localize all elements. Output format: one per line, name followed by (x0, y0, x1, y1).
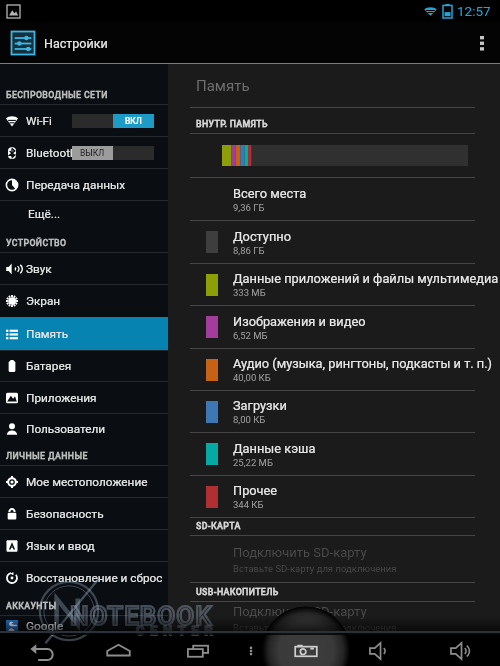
staticText: 9,36 ГБ (233, 202, 265, 213)
staticText: Язык и ввод (26, 539, 95, 553)
staticText: Память (196, 77, 250, 95)
staticText: Вставьте SD-карту для подключения (233, 563, 397, 574)
button[interactable]: Bluetooth (0, 137, 168, 168)
staticText: Батарея (26, 359, 72, 373)
button[interactable]: Данные кэша (168, 433, 500, 475)
staticText: Загрузки (233, 398, 287, 413)
staticText: ЛИЧНЫЕ ДАННЫЕ (6, 451, 88, 461)
button[interactable]: Передача данных (0, 169, 168, 200)
button[interactable]: Экран (0, 285, 168, 317)
button[interactable]: More options (464, 22, 500, 63)
button[interactable]: Wi-Fi (0, 105, 168, 136)
staticText: 333 МБ (233, 287, 266, 298)
staticText: Передача данных (26, 178, 126, 192)
staticText: Подключить SD-карту (233, 604, 367, 619)
button[interactable]: Изображения и видео (168, 306, 500, 348)
button[interactable]: Recent apps (179, 635, 217, 666)
staticText: 8,00 КБ (233, 414, 266, 425)
staticText: 6,52 МБ (233, 330, 268, 341)
button[interactable]: Прочее (168, 476, 500, 517)
staticText: Всего места (233, 186, 307, 201)
staticText: 8,86 ГБ (233, 245, 265, 256)
button[interactable]: Звук (0, 253, 168, 284)
button[interactable]: Ещё... (0, 201, 168, 227)
button[interactable]: Язык и ввод (0, 530, 168, 561)
staticText: Настройки (44, 36, 108, 51)
button[interactable]: Screenshot (287, 635, 325, 666)
button[interactable]: Восстановление и сброс (0, 562, 168, 593)
button[interactable]: Back (23, 635, 61, 666)
staticText: 12:57 (457, 3, 491, 19)
staticText: USB-НАКОПИТЕЛЬ (196, 587, 279, 597)
staticText: Подключить SD-карту (233, 545, 367, 560)
button[interactable]: Мое местоположение (0, 466, 168, 497)
staticText: ВЫКЛ (80, 148, 105, 158)
staticText: Доступно (233, 229, 291, 244)
staticText: Google (26, 619, 64, 633)
staticText: Изображения и видео (233, 314, 366, 329)
staticText: 25,22 МБ (233, 457, 273, 468)
staticText: Wi-Fi (26, 114, 52, 128)
staticText: Приложения (26, 391, 97, 405)
staticText: ВКЛ (125, 116, 142, 126)
staticText: Экран (26, 294, 61, 308)
staticText: Аудио (музыка, рингтоны, подкасты и т. п… (233, 356, 493, 371)
staticText: Данные кэша (233, 441, 316, 456)
staticText: Восстановление и сброс (26, 571, 163, 585)
staticText: УСТРОЙСТВО (6, 238, 67, 248)
button[interactable]: Безопасность (0, 498, 168, 529)
staticText: АККАУНТЫ (6, 601, 57, 611)
button[interactable]: Menu (232, 635, 270, 666)
button[interactable]: Аудио (музыка, рингтоны, подкасты и т. п… (168, 349, 500, 390)
button[interactable]: Пользователи (0, 414, 168, 444)
staticText: 40,00 КБ (233, 372, 271, 383)
button[interactable]: Настройки (10, 30, 108, 56)
staticText: Звук (26, 262, 52, 276)
button[interactable]: Google (0, 616, 168, 635)
staticText: Пользователи (26, 422, 106, 436)
button[interactable]: Volume down (362, 635, 400, 666)
button[interactable]: Volume up (443, 635, 481, 666)
button[interactable]: Данные приложений и файлы мультимедиа (168, 264, 500, 305)
staticText: Память (26, 327, 69, 341)
button[interactable]: Загрузки (168, 391, 500, 432)
staticText: SD-КАРТА (196, 521, 241, 531)
staticText: Ещё... (28, 207, 61, 221)
staticText: БЕСПРОВОДНЫЕ СЕТИ (6, 90, 108, 100)
staticText: 344 КБ (233, 499, 264, 510)
staticText: ВНУТР. ПАМЯТЬ (196, 119, 268, 129)
button[interactable]: Приложения (0, 382, 168, 413)
staticText: NOTEBOOK (70, 601, 213, 631)
staticText: Вставьте SD-карту для подключения (233, 622, 397, 633)
staticText: Безопасность (26, 507, 104, 521)
staticText: CENTER (136, 623, 219, 638)
staticText: Мое местоположение (26, 475, 148, 489)
button[interactable]: Всего места (168, 178, 500, 220)
staticText: Прочее (233, 483, 278, 498)
button[interactable]: Доступно (168, 221, 500, 263)
staticText: Bluetooth (26, 146, 77, 160)
staticText: Данные приложений и файлы мультимедиа (233, 271, 499, 286)
button[interactable]: Батарея (0, 351, 168, 381)
button[interactable]: Память (0, 317, 168, 350)
button[interactable]: Home (99, 635, 137, 666)
